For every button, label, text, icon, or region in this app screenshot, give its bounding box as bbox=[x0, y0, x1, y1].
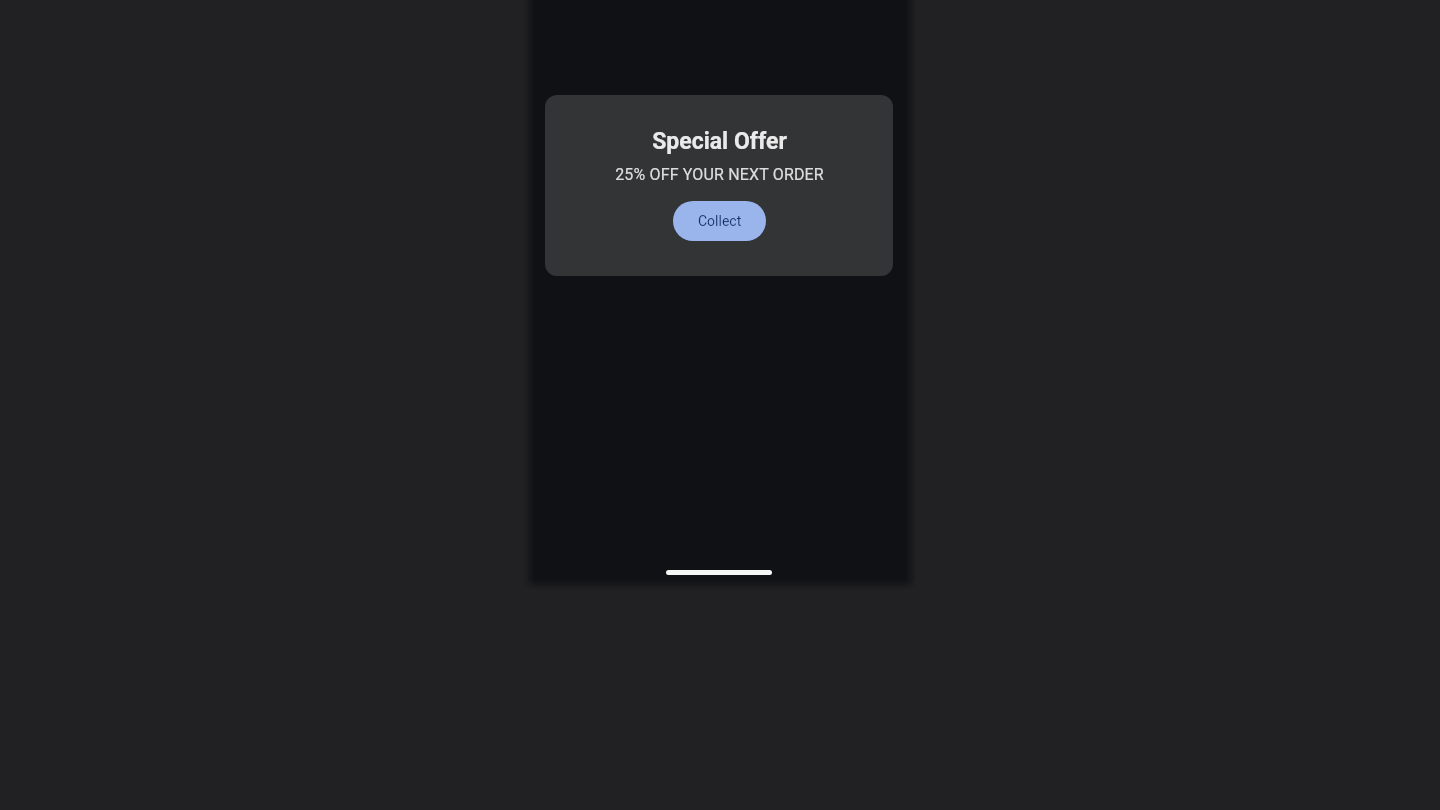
button[interactable]: Special Offer bbox=[545, 95, 893, 276]
button[interactable]: Collect bbox=[673, 201, 766, 241]
staticText: Special Offer bbox=[652, 128, 787, 155]
staticText: 25% OFF YOUR NEXT ORDER bbox=[615, 165, 824, 184]
staticText: Collect bbox=[698, 213, 742, 229]
